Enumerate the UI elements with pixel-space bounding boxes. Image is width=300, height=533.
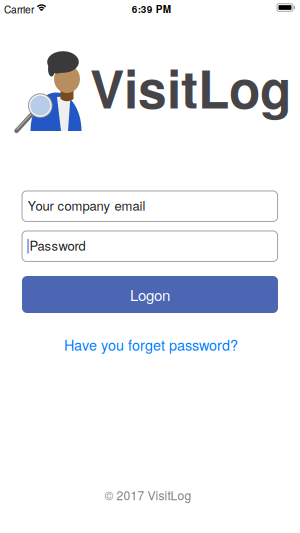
button[interactable]: Password <box>22 231 278 261</box>
staticText: VisitLog <box>90 51 291 124</box>
button[interactable]: Logon <box>22 276 278 313</box>
button[interactable]: Your company email <box>22 191 278 221</box>
staticText: Password <box>30 236 86 254</box>
staticText: Have you forget password? <box>64 334 238 355</box>
staticText: Logon <box>130 284 170 305</box>
staticText: Carrier <box>4 2 34 16</box>
staticText: 6:39 PM <box>132 2 171 16</box>
staticText: © 2017 VisitLog <box>104 486 191 504</box>
button[interactable]: Have you forget password? <box>64 334 238 355</box>
staticText: Your company email <box>28 196 146 214</box>
